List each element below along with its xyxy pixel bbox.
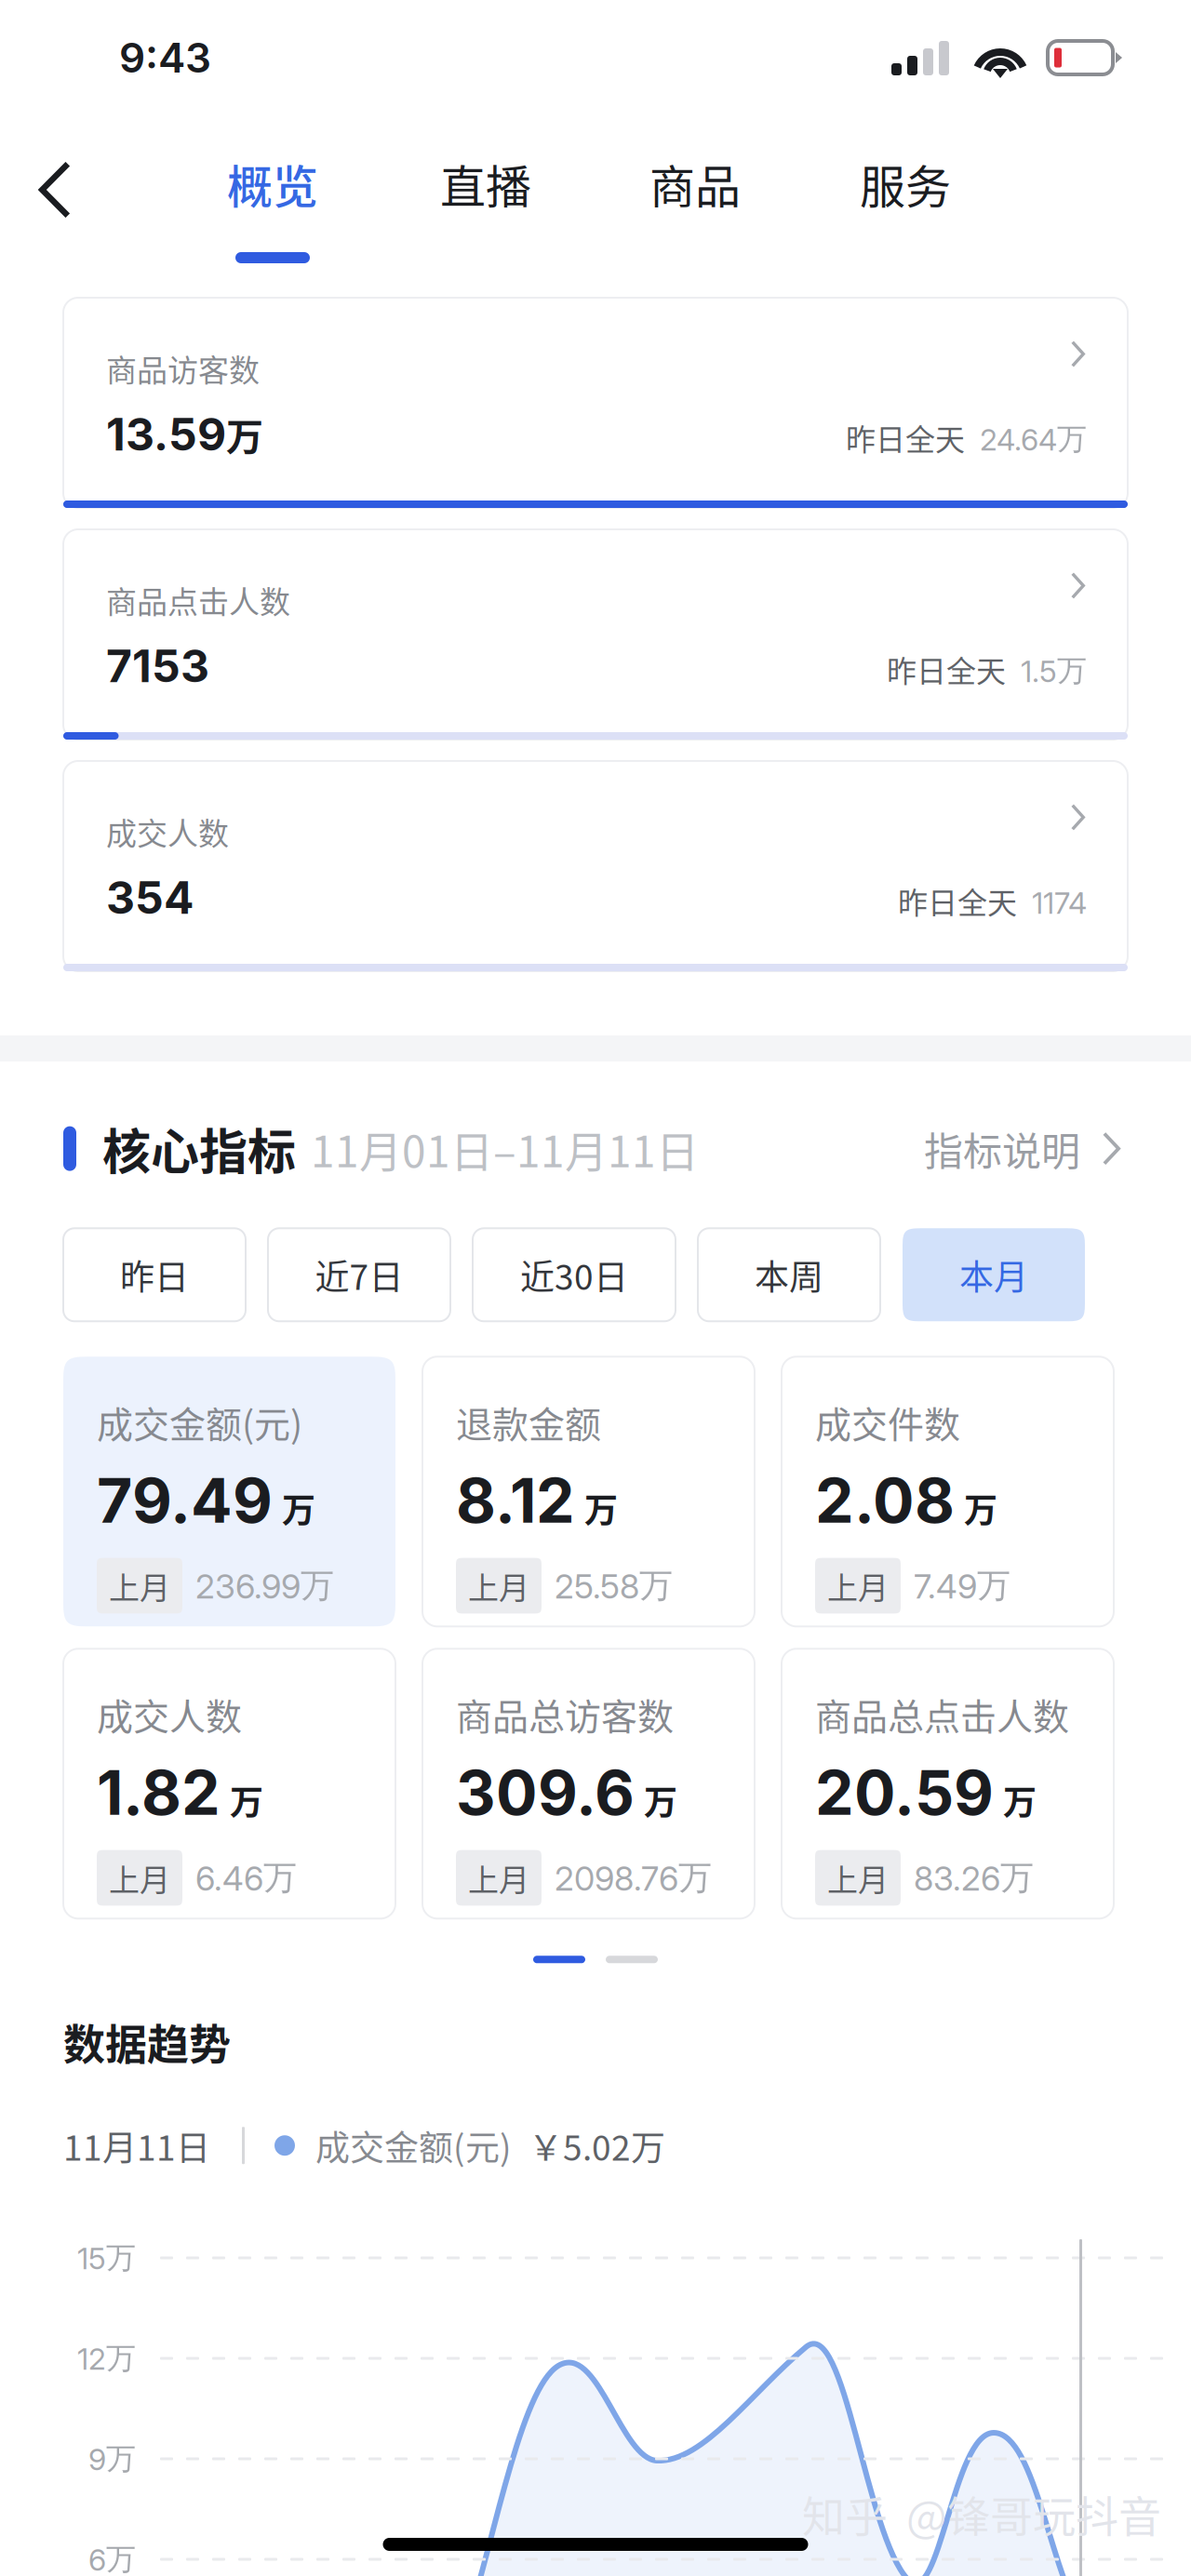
button[interactable]: 昨日 bbox=[63, 1228, 246, 1321]
button[interactable]: 近7日 bbox=[268, 1228, 450, 1321]
staticText: 7.49万 bbox=[914, 1565, 1010, 1607]
button[interactable]: 返回 bbox=[0, 115, 110, 264]
button[interactable]: 概览 bbox=[164, 115, 381, 279]
button[interactable]: 近30日 bbox=[473, 1228, 676, 1321]
staticText: 成交人数 bbox=[106, 809, 229, 854]
staticText: ￥5.02万 bbox=[529, 2121, 665, 2170]
staticText: 20.59 bbox=[815, 1755, 994, 1830]
staticText: 13.59 bbox=[106, 407, 226, 461]
staticText: 近7日 bbox=[315, 1250, 403, 1300]
staticText: 成交金额(元) bbox=[315, 2121, 512, 2170]
button[interactable]: 商品总点击人数 bbox=[782, 1649, 1114, 1919]
staticText: 商品 bbox=[649, 151, 741, 217]
staticText: 25.58万 bbox=[555, 1565, 673, 1607]
staticText: 9万 bbox=[88, 2440, 136, 2478]
button[interactable]: 服务 bbox=[800, 115, 1010, 279]
staticText: 9:43 bbox=[119, 33, 211, 82]
staticText: 1.82 bbox=[97, 1755, 221, 1830]
staticText: 商品总点击人数 bbox=[815, 1688, 1069, 1740]
staticText: 15万 bbox=[77, 2239, 136, 2277]
staticText: 昨日 bbox=[120, 1250, 189, 1300]
staticText: 万 bbox=[584, 1484, 618, 1532]
button[interactable]: 成交人数 bbox=[63, 761, 1128, 971]
staticText: 上月 bbox=[468, 1856, 529, 1900]
staticText: 直播 bbox=[440, 151, 531, 217]
staticText: 昨日全天 bbox=[898, 879, 1017, 922]
staticText: 83.26万 bbox=[914, 1857, 1034, 1899]
staticText: 2098.76万 bbox=[555, 1857, 712, 1899]
button[interactable]: 商品访客数 bbox=[63, 298, 1128, 508]
staticText: 成交人数 bbox=[97, 1688, 242, 1740]
staticText: 11月01日–11月11日 bbox=[311, 1118, 699, 1180]
staticText: 昨日全天 bbox=[846, 416, 965, 459]
staticText: 退款金额 bbox=[456, 1396, 601, 1448]
staticText: 商品总访客数 bbox=[456, 1688, 674, 1740]
button[interactable]: 本周 bbox=[698, 1228, 880, 1321]
staticText: 24.64万 bbox=[980, 420, 1087, 458]
staticText: 数据趋势 bbox=[63, 2012, 231, 2072]
staticText: 概览 bbox=[227, 151, 318, 217]
staticText: 万 bbox=[964, 1484, 997, 1532]
staticText: 商品点击人数 bbox=[106, 578, 290, 622]
button[interactable]: 成交金额(元) bbox=[63, 1357, 395, 1626]
staticText: 核心指标 bbox=[102, 1114, 296, 1184]
button[interactable]: 商品点击人数 bbox=[63, 529, 1128, 740]
button[interactable]: 成交件数 bbox=[782, 1357, 1114, 1626]
staticText: 万 bbox=[644, 1776, 677, 1824]
staticText: 309.6 bbox=[456, 1755, 635, 1830]
button[interactable]: 指标说明 bbox=[924, 1120, 1128, 1177]
staticText: 万 bbox=[282, 1484, 315, 1532]
staticText: 万 bbox=[230, 1776, 263, 1824]
staticText: 成交件数 bbox=[815, 1396, 960, 1448]
staticText: 昨日全天 bbox=[887, 648, 1006, 691]
staticText: 2.08 bbox=[815, 1463, 955, 1538]
button[interactable]: 直播 bbox=[381, 115, 590, 279]
staticText: 商品访客数 bbox=[106, 346, 260, 391]
staticText: 上月 bbox=[827, 1856, 889, 1900]
staticText: 万 bbox=[1003, 1776, 1037, 1824]
button[interactable]: 商品 bbox=[590, 115, 800, 279]
staticText: 上月 bbox=[468, 1563, 529, 1608]
button[interactable]: 本月 bbox=[903, 1228, 1085, 1321]
staticText: 6万 bbox=[88, 2541, 136, 2576]
staticText: 上月 bbox=[827, 1563, 889, 1608]
staticText: 近30日 bbox=[520, 1250, 628, 1300]
staticText: 本月 bbox=[959, 1250, 1028, 1300]
button[interactable]: 商品总访客数 bbox=[422, 1649, 755, 1919]
staticText: 11月11日 bbox=[63, 2121, 210, 2170]
staticText: 成交金额(元) bbox=[97, 1396, 302, 1448]
staticText: 万 bbox=[226, 407, 263, 461]
staticText: 236.99万 bbox=[195, 1565, 334, 1607]
staticText: 1174 bbox=[1032, 885, 1087, 921]
staticText: 7153 bbox=[106, 639, 209, 693]
staticText: 上月 bbox=[109, 1856, 170, 1900]
staticText: 服务 bbox=[860, 151, 951, 217]
staticText: 指标说明 bbox=[924, 1120, 1080, 1177]
staticText: 12万 bbox=[77, 2340, 136, 2377]
button[interactable]: 退款金额 bbox=[422, 1357, 755, 1626]
staticText: 79.49 bbox=[97, 1463, 273, 1538]
staticText: 6.46万 bbox=[195, 1857, 297, 1899]
staticText: 本周 bbox=[755, 1250, 823, 1300]
staticText: 上月 bbox=[109, 1563, 170, 1608]
staticText: 354 bbox=[106, 871, 194, 925]
staticText: 8.12 bbox=[456, 1463, 575, 1538]
staticText: 知乎 @锋哥玩抖音 bbox=[802, 2482, 1161, 2544]
staticText: 1.5万 bbox=[1021, 652, 1087, 690]
button[interactable]: 成交人数 bbox=[63, 1649, 395, 1919]
